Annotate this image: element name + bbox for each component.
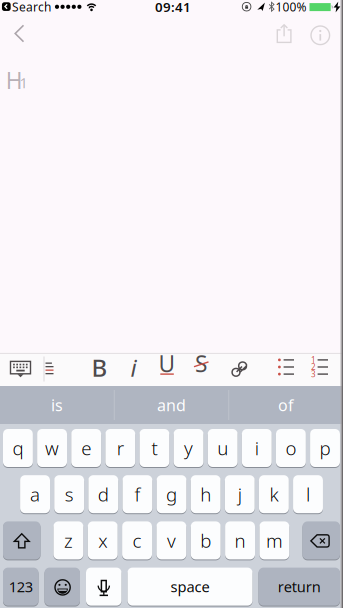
staticText: 1 [20,73,28,92]
button[interactable]: space [127,568,252,606]
button[interactable] [310,25,330,45]
staticText: g [166,482,177,507]
staticText: s [65,482,74,507]
button[interactable]: z [53,521,83,559]
button[interactable]: 123 [3,568,38,606]
staticText: a [30,482,40,507]
button[interactable] [10,361,31,378]
button[interactable]: h [191,475,221,513]
staticText: H [6,65,23,95]
staticText: j [238,482,242,507]
button[interactable]: return [258,568,340,606]
button[interactable]: b [191,521,221,559]
staticText: 123 [9,577,33,596]
staticText: r [117,436,124,460]
staticText: space [170,577,209,596]
staticText: 2 [311,362,316,372]
button[interactable]: f [122,475,152,513]
button[interactable] [3,521,40,559]
button[interactable]: q [3,429,33,467]
button[interactable] [5,22,33,45]
button[interactable] [86,568,121,606]
button[interactable]: and [115,386,228,424]
staticText: o [285,436,296,460]
button[interactable]: a [20,475,50,513]
button[interactable]: k [259,475,289,513]
staticText: 09:41 [155,0,191,16]
staticText: q [12,436,23,460]
staticText: 3 [311,369,316,379]
staticText: return [278,577,321,596]
button[interactable]: of [229,386,342,424]
staticText: k [269,482,278,507]
staticText: w [45,436,59,460]
staticText: is [51,394,63,416]
staticText: l [306,482,310,507]
button[interactable] [44,568,80,606]
staticText: n [234,528,245,553]
button[interactable]: n [225,521,255,559]
staticText: m [266,528,283,553]
button[interactable]: S [188,352,214,382]
staticText: U [158,348,175,378]
button[interactable]: i [242,429,272,467]
staticText: y [184,436,193,460]
button[interactable]: i [122,352,144,382]
button[interactable]: U [154,352,180,382]
staticText: 1 [311,355,316,365]
button[interactable]: u [208,429,238,467]
button[interactable]: x [88,521,118,559]
button[interactable] [302,521,340,559]
button[interactable]: p [310,429,340,467]
button[interactable] [277,24,292,43]
button[interactable]: e [71,429,101,467]
button[interactable] [231,361,247,377]
button[interactable]: is [0,386,113,424]
staticText: 100% [275,0,306,15]
button[interactable] [278,358,294,375]
button[interactable] [45,362,53,374]
staticText: x [98,528,107,553]
staticText: v [167,528,176,553]
staticText: z [64,528,73,553]
staticText: d [98,482,109,507]
button[interactable]: s [54,475,84,513]
button[interactable]: 1 [312,358,328,375]
staticText: i [130,352,136,383]
button[interactable]: d [88,475,118,513]
staticText: e [81,436,91,460]
button[interactable]: B [86,352,112,382]
staticText: S [195,348,207,378]
button[interactable]: y [174,429,203,467]
staticText: c [133,528,142,553]
staticText: p [319,436,330,460]
staticText: b [200,528,211,553]
button[interactable]: m [259,521,289,559]
staticText: B [91,352,107,383]
button[interactable]: o [276,429,306,467]
staticText: f [134,482,140,507]
staticText: i [255,436,259,460]
staticText: u [217,436,228,460]
button[interactable]: r [105,429,135,467]
button[interactable]: v [156,521,186,559]
button[interactable]: t [139,429,169,467]
button[interactable]: w [37,429,67,467]
staticText: h [200,482,211,507]
button[interactable]: l [293,475,323,513]
staticText: Search [12,0,51,15]
button[interactable]: g [157,475,186,513]
staticText: and [157,394,186,416]
staticText: of [278,394,294,416]
button[interactable] [2,2,11,11]
button[interactable]: j [225,475,255,513]
button[interactable]: c [122,521,152,559]
staticText: t [151,436,157,460]
